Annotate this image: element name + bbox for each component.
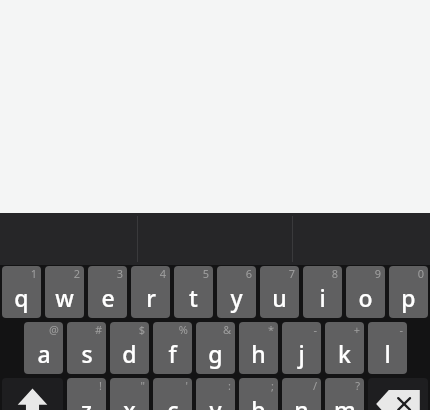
staticText: o [358,282,373,313]
staticText: / [312,378,317,393]
button[interactable]: 0 [389,266,428,318]
staticText: 0 [417,266,424,281]
staticText: ' [185,378,188,393]
staticText: g [208,338,223,369]
staticText: a [37,338,51,369]
staticText: + [353,322,360,337]
staticText: 4 [159,266,166,281]
button[interactable]: ? [325,378,364,410]
staticText: e [101,282,115,313]
staticText: 5 [202,266,209,281]
button[interactable]: - [368,322,407,374]
staticText: i [319,282,326,313]
staticText: * [267,322,274,337]
staticText: 2 [73,266,80,281]
button[interactable]: - [282,322,321,374]
button[interactable]: % [153,322,192,374]
staticText: 9 [374,266,381,281]
staticText: ? [355,378,360,393]
staticText: - [313,322,317,337]
button[interactable]: 6 [217,266,256,318]
button[interactable]: Shift [2,378,63,410]
button[interactable]: 5 [174,266,213,318]
staticText: w [55,282,74,313]
button[interactable]: " [110,378,149,410]
staticText: d [122,338,137,369]
button[interactable]: # [67,322,106,374]
staticText: c [167,394,179,410]
staticText: k [338,338,351,369]
staticText: p [401,282,416,313]
staticText: @ [49,322,59,337]
staticText: : [228,378,231,393]
staticText: 3 [116,266,123,281]
button[interactable]: & [196,322,235,374]
staticText: x [123,394,136,410]
button[interactable]: 8 [303,266,342,318]
staticText: y [230,282,243,313]
staticText: % [178,322,188,337]
staticText: q [14,282,29,313]
button[interactable]: + [325,322,364,374]
staticText: z [81,394,92,410]
button[interactable]: Backspace [368,378,428,410]
staticText: " [140,378,145,393]
staticText: 7 [288,266,295,281]
staticText: n [294,394,309,410]
button[interactable]: ! [67,378,106,410]
staticText: t [189,282,198,313]
staticText: s [81,338,93,369]
button[interactable]: $ [110,322,149,374]
staticText: $ [138,322,145,337]
staticText: b [251,394,266,410]
button[interactable]: 4 [131,266,170,318]
button[interactable]: 3 [88,266,127,318]
button[interactable]: : [196,378,235,410]
button[interactable]: ' [153,378,192,410]
staticText: v [209,394,222,410]
staticText: l [384,338,391,369]
staticText: j [298,338,305,369]
button[interactable]: 7 [260,266,299,318]
button[interactable]: * [239,322,278,374]
staticText: - [399,322,403,337]
button[interactable]: / [282,378,321,410]
staticText: 1 [30,266,37,281]
staticText: m [334,394,356,410]
staticText: 8 [331,266,338,281]
staticText: h [251,338,266,369]
staticText: r [146,282,156,313]
staticText: & [222,322,231,337]
button[interactable]: 9 [346,266,385,318]
staticText: u [272,282,287,313]
button[interactable]: 1 [2,266,41,318]
staticText: ; [271,378,274,393]
staticText: ! [99,378,102,393]
staticText: f [168,338,177,369]
button[interactable]: ; [239,378,278,410]
button[interactable]: @ [24,322,63,374]
staticText: 6 [245,266,252,281]
button[interactable]: 2 [45,266,84,318]
staticText: # [94,322,102,337]
